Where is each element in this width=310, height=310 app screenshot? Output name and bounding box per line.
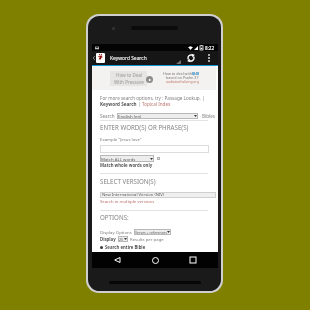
button[interactable]: Back [104,252,130,268]
button[interactable]: Recents [180,252,206,268]
staticText: For more search options, try : Passage L… [100,95,205,101]
staticText: Topical Index [142,101,171,107]
staticText: audiotruthsliving.org [166,79,199,83]
staticText: ENTER WORD(S) OR PHRASE(S) [100,123,189,131]
staticText: Keyword Search [110,55,147,62]
staticText: Example "Jesus love" [100,136,142,142]
staticText: 25 [119,237,124,242]
staticText: Search entire Bible [105,244,146,250]
staticText: Search [100,113,115,119]
staticText: OPTIONS: [100,213,129,221]
button[interactable]: New International Version (NIV) [100,192,216,198]
button[interactable]: English (en) [117,113,198,119]
staticText: Search in multiple versions [100,198,155,204]
button[interactable]: Match whole words only [157,157,160,160]
staticText: 8:22 [205,45,215,51]
staticText: Keyword Search [100,101,137,107]
button[interactable]: Refresh [186,53,196,63]
staticText: based on Psalm 37 [166,75,199,80]
staticText: Display Options [100,229,132,235]
staticText: Verses + references [135,230,167,235]
staticText: | [137,101,142,107]
button[interactable]: More options [204,53,214,63]
staticText: Display [100,236,116,242]
button[interactable]: Play ad [146,76,153,83]
button[interactable]: Verses + references [134,229,171,235]
staticText: New International Version (NIV) [102,192,165,198]
staticText: How to deal with pre [163,71,199,76]
staticText: Bibles [202,113,215,119]
staticText: With Pressure [114,79,144,85]
button[interactable]: Search words input [100,145,209,153]
staticText: SELECT VERSION(S) [100,177,156,185]
button[interactable]: Home [142,252,168,268]
staticText: Match ALL words [101,156,136,162]
staticText: How to Deal [116,72,143,78]
staticText: English (en) [118,113,142,119]
button[interactable]: Match ALL words [100,155,154,162]
staticText: Match whole words only [100,162,153,168]
staticText: Results per page [130,236,164,242]
button[interactable]: 25 [118,236,128,242]
